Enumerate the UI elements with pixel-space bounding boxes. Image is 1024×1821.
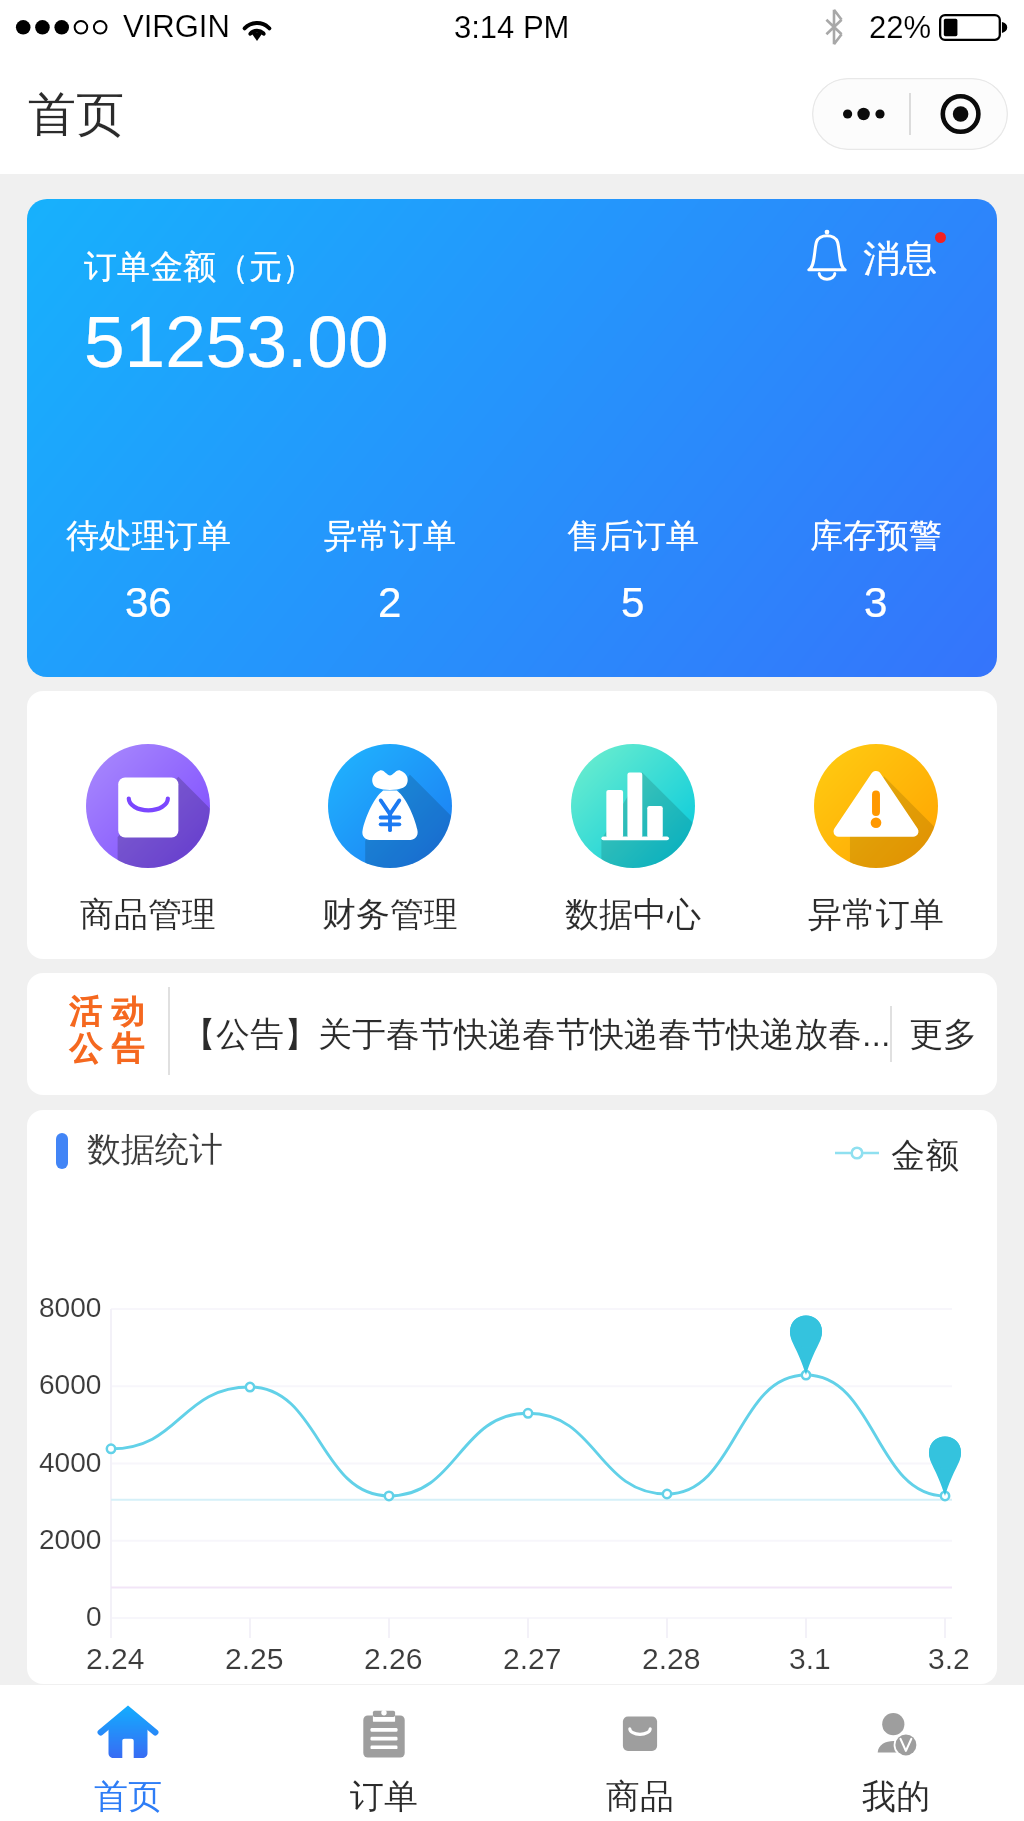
button[interactable]: 异常订单 bbox=[754, 744, 997, 936]
staticText: 3 bbox=[864, 579, 888, 626]
staticText: 活 动 bbox=[69, 991, 145, 1033]
staticText: 51253.00 bbox=[84, 301, 389, 383]
staticText: 订单金额（元） bbox=[84, 246, 315, 288]
staticText: 3.2 bbox=[928, 1642, 970, 1676]
staticText: VIRGIN bbox=[123, 9, 230, 44]
staticText: 待处理订单 bbox=[66, 515, 231, 557]
staticText: 2.25 bbox=[225, 1642, 284, 1676]
staticText: 2.27 bbox=[503, 1642, 562, 1676]
button[interactable]: More options and close mini program bbox=[812, 78, 1008, 150]
staticText: 4000 bbox=[39, 1447, 102, 1478]
staticText: 库存预警 bbox=[810, 515, 942, 557]
staticText: 首页 bbox=[94, 1775, 162, 1818]
staticText: 更多 bbox=[909, 1013, 977, 1056]
staticText: 2.28 bbox=[642, 1642, 701, 1676]
staticText: 5 bbox=[621, 579, 645, 626]
staticText: 订单 bbox=[350, 1775, 418, 1818]
button[interactable]: 商品管理 bbox=[27, 744, 269, 936]
staticText: 公 告 bbox=[69, 1028, 145, 1070]
staticText: 财务管理 bbox=[322, 893, 458, 936]
staticText: 首页 bbox=[28, 85, 124, 145]
button[interactable]: 异常订单 bbox=[269, 515, 511, 626]
button[interactable]: 财务管理 bbox=[269, 744, 511, 936]
staticText: 2.26 bbox=[364, 1642, 423, 1676]
staticText: 2000 bbox=[39, 1524, 102, 1555]
staticText: 3:14 PM bbox=[454, 10, 570, 45]
button[interactable]: 售后订单 bbox=[511, 515, 754, 626]
button[interactable]: 活 动 bbox=[27, 973, 997, 1095]
staticText: 售后订单 bbox=[567, 515, 699, 557]
staticText: 22% bbox=[869, 10, 932, 45]
staticText: 36 bbox=[125, 579, 172, 626]
staticText: 3.1 bbox=[789, 1642, 831, 1676]
staticText: 消息 bbox=[863, 235, 937, 282]
staticText: 8000 bbox=[39, 1292, 102, 1323]
staticText: 6000 bbox=[39, 1369, 102, 1400]
button[interactable]: 首页 bbox=[0, 1685, 256, 1821]
button[interactable]: 商品 bbox=[512, 1685, 768, 1821]
button[interactable]: 订单金额（元） bbox=[27, 199, 997, 677]
staticText: 2 bbox=[378, 579, 402, 626]
staticText: 数据中心 bbox=[565, 893, 701, 936]
button[interactable]: 我的 bbox=[768, 1685, 1024, 1821]
staticText: 0 bbox=[86, 1601, 102, 1632]
staticText: 商品 bbox=[606, 1775, 674, 1818]
staticText: 数据统计 bbox=[87, 1128, 223, 1171]
staticText: 商品管理 bbox=[80, 893, 216, 936]
staticText: 我的 bbox=[862, 1775, 930, 1818]
button[interactable]: 数据中心 bbox=[511, 744, 754, 936]
button[interactable]: 待处理订单 bbox=[27, 515, 269, 626]
staticText: 异常订单 bbox=[808, 893, 944, 936]
staticText: 金额 bbox=[891, 1134, 959, 1177]
staticText: 异常订单 bbox=[324, 515, 456, 557]
button[interactable]: 库存预警 bbox=[754, 515, 997, 626]
button[interactable]: 订单 bbox=[256, 1685, 512, 1821]
staticText: 【公告】关于春节快递春节快递春节快递放春... bbox=[182, 1013, 891, 1056]
staticText: 2.24 bbox=[86, 1642, 145, 1676]
